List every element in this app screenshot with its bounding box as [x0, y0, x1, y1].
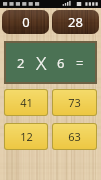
button[interactable]: Time — [52, 10, 99, 34]
staticText: X — [36, 50, 47, 76]
button[interactable]: 41 — [5, 90, 47, 115]
button[interactable]: 73 — [53, 90, 96, 115]
button[interactable]: 2 — [6, 43, 95, 82]
staticText: 0 — [22, 13, 30, 31]
button[interactable]: 63 — [53, 124, 96, 149]
staticText: 28 — [68, 13, 83, 31]
staticText: = — [76, 54, 84, 72]
staticText: 41 — [20, 95, 33, 110]
button[interactable]: 12 — [5, 124, 47, 149]
staticText: 6 — [57, 54, 65, 72]
staticText: 12 — [20, 129, 33, 144]
staticText: 73 — [68, 95, 81, 110]
staticText: 63 — [68, 129, 81, 144]
button[interactable]: Score — [2, 10, 49, 34]
staticText: 2 — [17, 54, 25, 72]
